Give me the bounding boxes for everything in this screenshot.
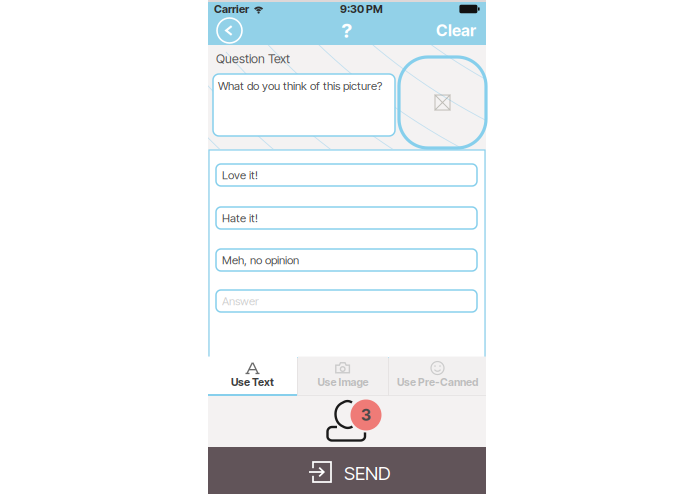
staticText: Answer xyxy=(222,294,259,308)
staticText: Use Image xyxy=(317,375,368,388)
button[interactable]: Meh, no opinion xyxy=(216,249,477,271)
button[interactable]: Answer xyxy=(216,290,477,312)
staticText: Carrier xyxy=(214,2,249,16)
button[interactable]: Use Pre-Canned xyxy=(389,358,486,396)
button[interactable]: Love it! xyxy=(216,164,477,186)
button[interactable]: Use Text xyxy=(208,358,297,396)
staticText: Question Text xyxy=(216,51,290,66)
button[interactable]: Recipients: 3 xyxy=(208,397,486,447)
staticText: SEND xyxy=(344,462,391,485)
staticText: What do you think of this picture? xyxy=(218,79,382,93)
staticText: Use Text xyxy=(231,375,274,388)
button[interactable]: Use Image xyxy=(298,358,388,396)
staticText: Use Pre-Canned xyxy=(397,375,478,388)
staticText: 9:30 PM xyxy=(340,2,383,16)
staticText: Hate it! xyxy=(222,211,258,225)
button[interactable]: Clear xyxy=(431,15,481,45)
button[interactable]: SEND xyxy=(208,447,486,494)
staticText: Meh, no opinion xyxy=(222,253,299,267)
staticText: Love it! xyxy=(222,168,258,182)
staticText: ? xyxy=(341,18,352,43)
button[interactable]: Back xyxy=(213,15,246,45)
staticText: 3 xyxy=(361,405,371,425)
staticText: Clear xyxy=(436,21,476,40)
image xyxy=(434,94,450,110)
button[interactable]: Hate it! xyxy=(216,207,477,229)
